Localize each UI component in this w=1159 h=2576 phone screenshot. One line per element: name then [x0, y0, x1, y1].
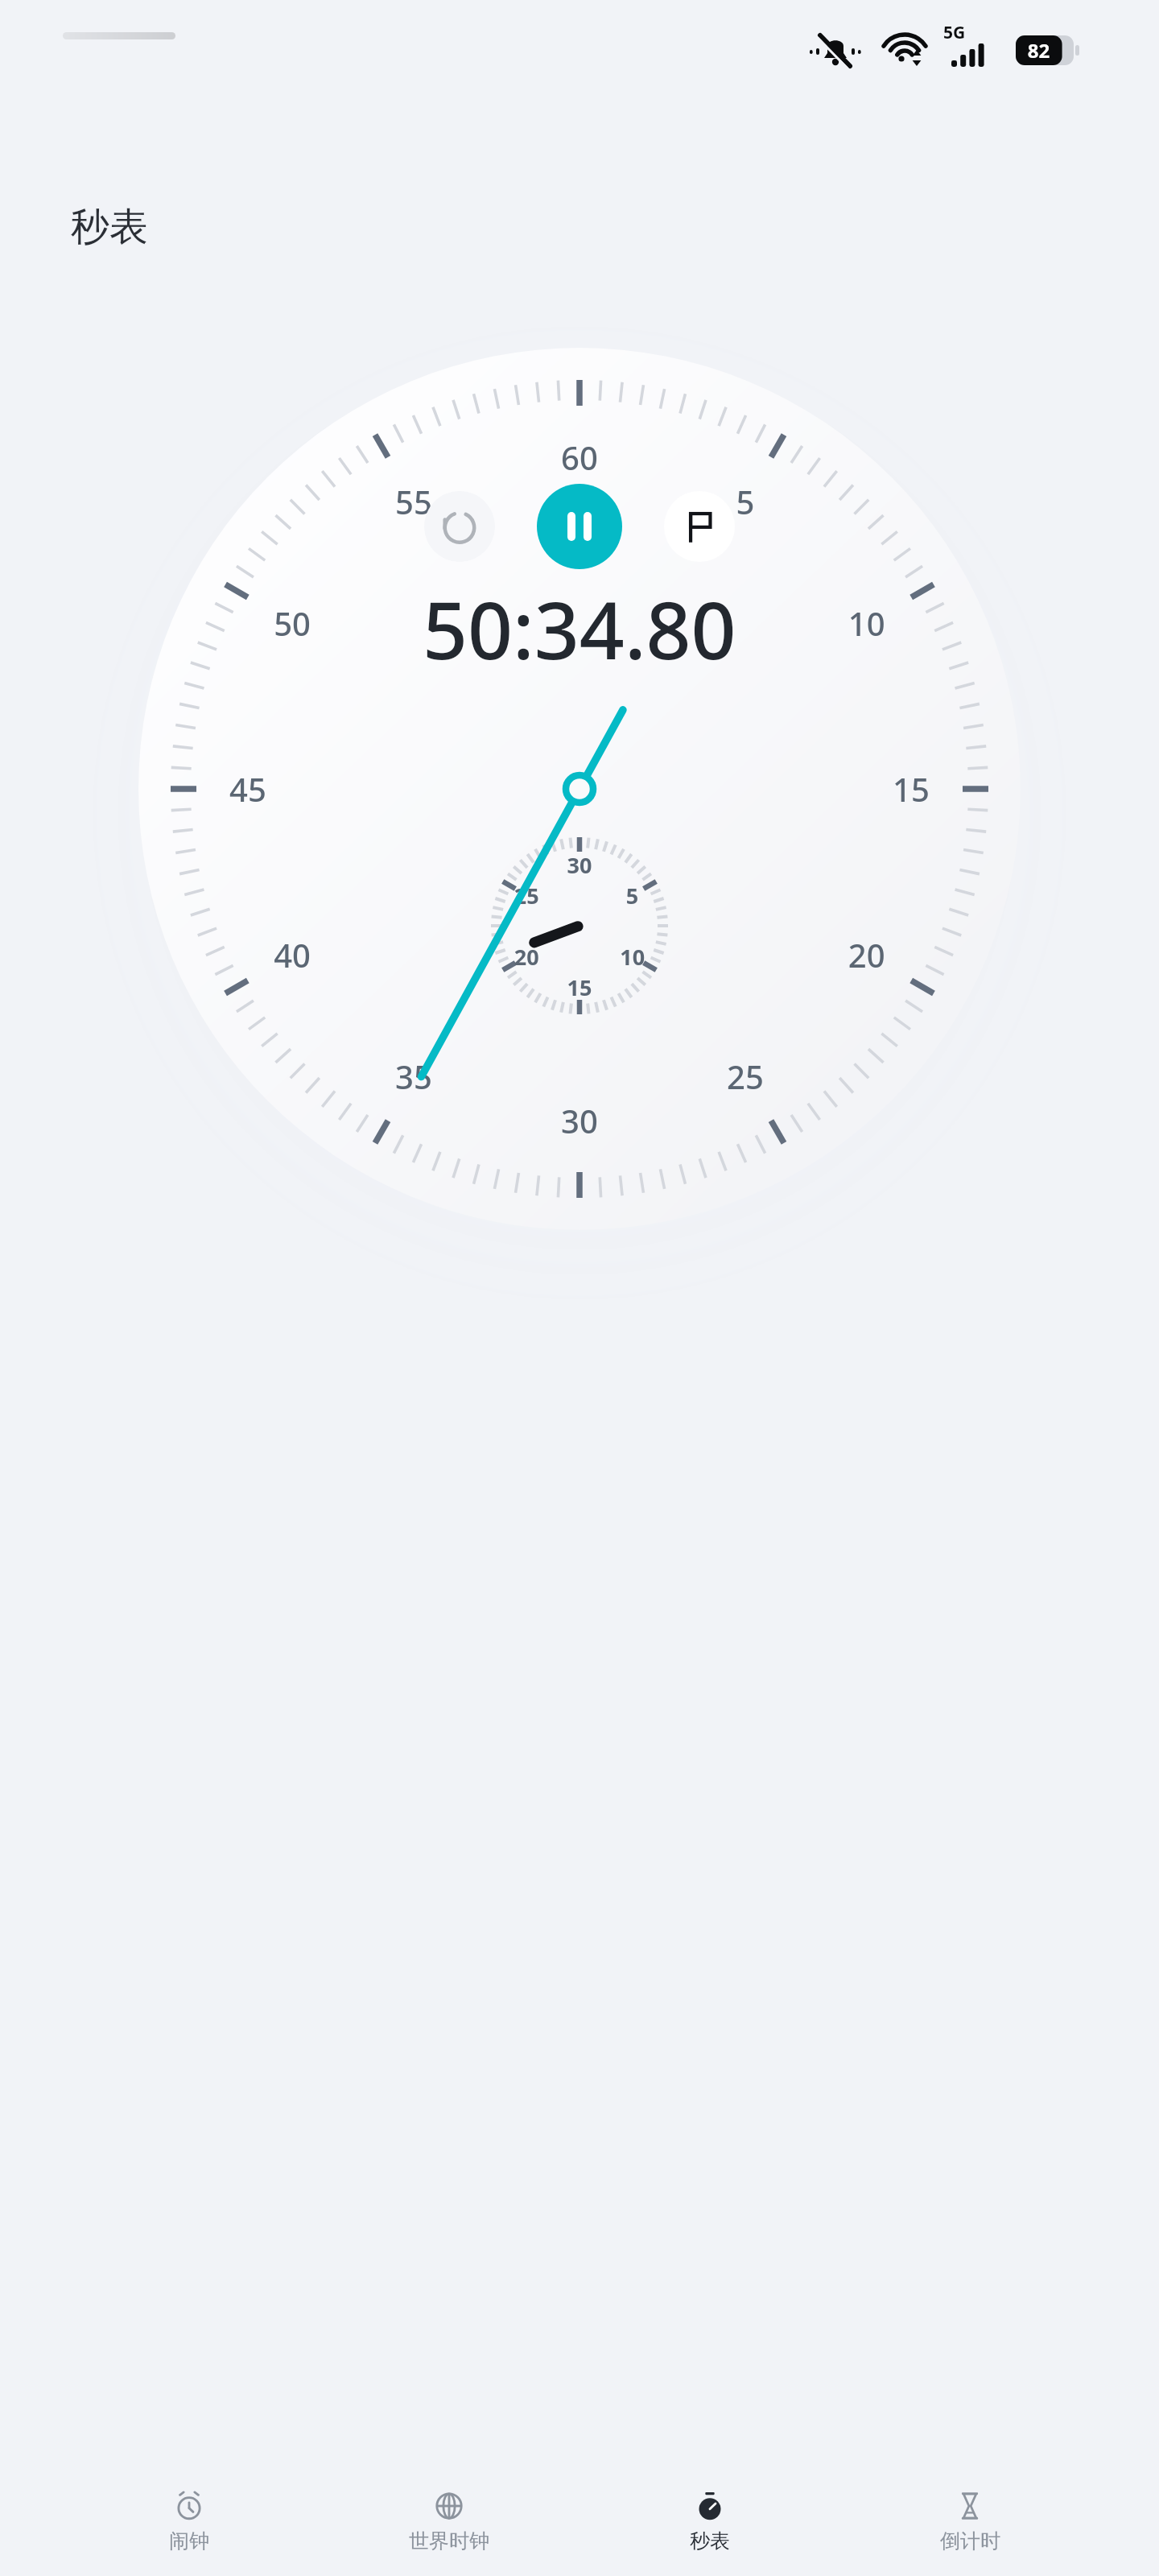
staticText: 倒计时: [940, 2529, 1000, 2553]
staticText: 世界时钟: [409, 2529, 489, 2553]
button[interactable]: 闹钟: [118, 2486, 260, 2558]
button[interactable]: Lap: [664, 491, 735, 562]
button[interactable]: 世界时钟: [378, 2486, 520, 2558]
staticText: 闹钟: [169, 2529, 209, 2553]
button[interactable]: 秒表: [639, 2486, 781, 2558]
staticText: 秒表: [690, 2529, 730, 2553]
button[interactable]: Reset: [424, 491, 495, 562]
button[interactable]: Pause: [537, 484, 622, 569]
button[interactable]: 倒计时: [899, 2486, 1041, 2558]
